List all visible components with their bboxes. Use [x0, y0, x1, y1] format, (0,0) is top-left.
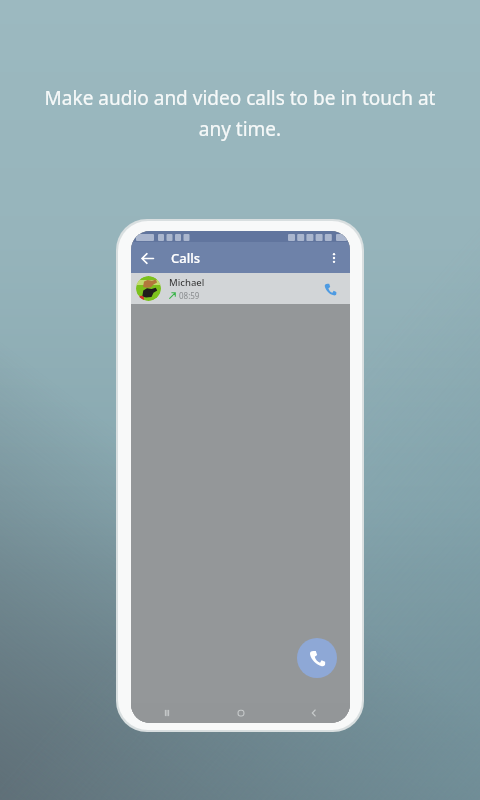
button[interactable]: Recents	[131, 703, 204, 723]
button[interactable]: New call	[297, 638, 337, 678]
staticText: Make audio and video calls to be in touc…	[40, 85, 440, 142]
button[interactable]: More options	[322, 246, 346, 270]
staticText: Calls	[171, 249, 201, 267]
button[interactable]: Back	[134, 245, 160, 271]
button[interactable]: Call Michael	[318, 277, 342, 301]
button[interactable]: Back	[277, 703, 350, 723]
staticText: Michael	[169, 276, 205, 289]
button[interactable]: Michael	[131, 273, 350, 304]
button[interactable]: Home	[204, 703, 277, 723]
staticText: 08:59	[179, 290, 200, 301]
